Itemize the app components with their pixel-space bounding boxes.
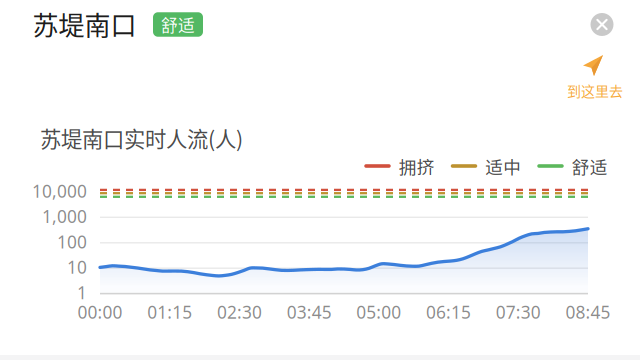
staticText: 100 bbox=[57, 230, 87, 253]
staticText: 1 bbox=[77, 281, 87, 304]
staticText: 10,000 bbox=[32, 179, 87, 202]
staticText: 舒适 bbox=[161, 12, 195, 36]
staticText: 10 bbox=[67, 256, 87, 279]
staticText: 1,000 bbox=[42, 205, 87, 228]
staticText: 07:30 bbox=[496, 300, 541, 323]
staticText: 02:30 bbox=[217, 300, 262, 323]
staticText: 适中 bbox=[485, 153, 521, 179]
staticText: 到这里去 bbox=[567, 80, 623, 101]
staticText: 01:15 bbox=[147, 300, 192, 323]
staticText: 05:00 bbox=[356, 300, 401, 323]
button[interactable]: 到这里去 bbox=[0, 0, 640, 360]
button[interactable]: 关闭 bbox=[0, 0, 640, 360]
staticText: 08:45 bbox=[565, 300, 610, 323]
staticText: 苏堤南口实时人流(人) bbox=[40, 123, 243, 153]
staticText: 03:45 bbox=[287, 300, 332, 323]
staticText: 舒适 bbox=[572, 153, 608, 179]
staticText: 06:15 bbox=[426, 300, 471, 323]
button[interactable]: 舒适 bbox=[153, 12, 203, 37]
staticText: 拥挤 bbox=[399, 153, 435, 179]
staticText: 00:00 bbox=[77, 300, 122, 323]
staticText: 苏堤南口 bbox=[32, 5, 136, 43]
